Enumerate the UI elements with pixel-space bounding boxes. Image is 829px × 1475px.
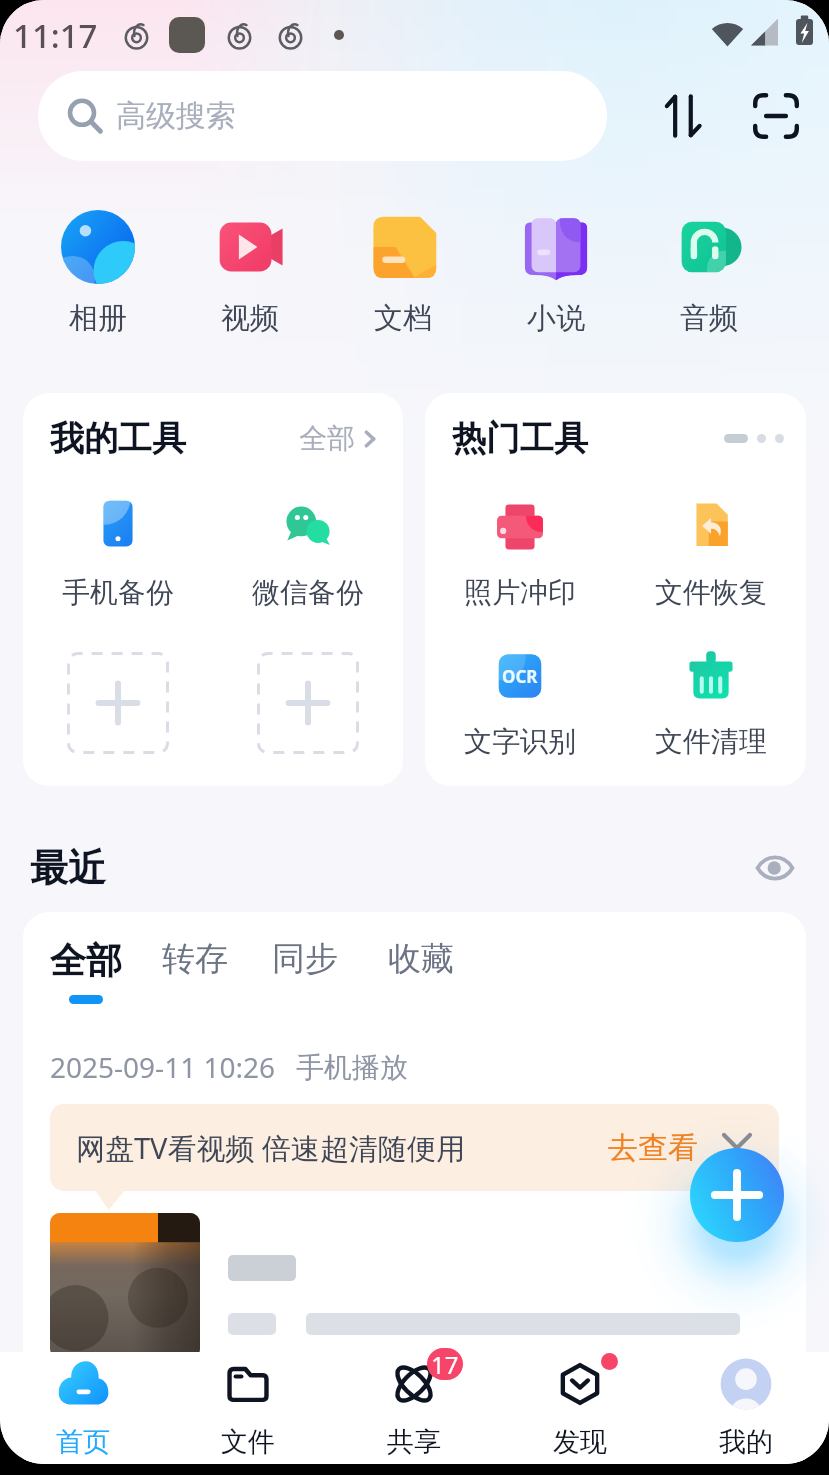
staticText: 2025-09-11 10:26 — [50, 1048, 276, 1086]
staticText: 17 — [431, 1348, 459, 1380]
button[interactable]: 网盘TV看视频 倍速超清随便用 — [50, 1104, 779, 1191]
staticText: 照片冲印 — [464, 575, 576, 610]
staticText: 全部 — [50, 938, 122, 983]
staticText: 最近 — [30, 844, 106, 892]
button[interactable]: OCR — [425, 648, 615, 759]
staticText: 文件清理 — [655, 724, 767, 759]
button[interactable]: Scan — [741, 81, 811, 151]
staticText: 同步 — [272, 938, 338, 980]
button[interactable]: 文档 — [326, 210, 479, 337]
button[interactable]: 小说 — [479, 210, 632, 337]
staticText: 相册 — [69, 300, 127, 337]
button[interactable]: 高级搜索 — [38, 71, 607, 161]
button[interactable]: 文件清理 — [615, 648, 806, 759]
staticText: 小说 — [527, 300, 585, 337]
staticText: 文字识别 — [464, 724, 576, 759]
button[interactable]: 照片冲印 — [425, 499, 615, 610]
button[interactable]: 相册 — [22, 210, 174, 337]
button[interactable]: 转存 — [162, 938, 228, 992]
button[interactable]: Close — [724, 1135, 750, 1161]
staticText: 手机播放 — [296, 1050, 408, 1085]
staticText: OCR — [502, 665, 538, 688]
staticText: 我的 — [719, 1425, 773, 1459]
button[interactable]: 微信备份 — [213, 499, 403, 610]
button[interactable]: 发现 — [497, 1352, 663, 1464]
staticText: 收藏 — [388, 938, 454, 980]
button[interactable]: 视频 — [174, 210, 326, 337]
staticText: 转存 — [162, 938, 228, 980]
staticText: 高级搜索 — [116, 97, 236, 135]
button[interactable]: 收藏 — [388, 938, 454, 992]
staticText: 文件恢复 — [655, 575, 767, 610]
button[interactable]: 文件 — [165, 1352, 331, 1464]
staticText: 全部 — [299, 421, 355, 456]
staticText: 首页 — [56, 1425, 110, 1459]
button[interactable]: 全部 — [50, 938, 122, 1004]
staticText: 音频 — [680, 300, 738, 337]
staticText: 11:17 — [13, 13, 98, 58]
button[interactable]: 同步 — [272, 938, 338, 992]
staticText: 我的工具 — [50, 417, 186, 460]
staticText: 热门工具 — [452, 417, 588, 460]
button[interactable]: 手机备份 — [23, 499, 213, 610]
staticText: 共享 — [387, 1425, 441, 1459]
staticText: 视频 — [221, 300, 279, 337]
button[interactable]: 17 — [331, 1352, 497, 1464]
staticText: 网盘TV看视频 倍速超清随便用 — [76, 1128, 466, 1168]
button[interactable]: Sort — [649, 81, 719, 151]
button[interactable]: Add tool — [67, 652, 169, 754]
button[interactable]: 我的 — [663, 1352, 829, 1464]
button[interactable]: 全部 — [299, 421, 383, 456]
button[interactable]: 文件恢复 — [615, 499, 806, 610]
staticText: 发现 — [553, 1425, 607, 1459]
button[interactable]: Add tool — [257, 652, 359, 754]
button[interactable]: Add — [690, 1148, 784, 1242]
staticText: 文档 — [374, 300, 432, 337]
staticText: 文件 — [221, 1425, 275, 1459]
button[interactable]: Toggle preview — [749, 842, 801, 894]
button[interactable]: 首页 — [0, 1352, 165, 1464]
button[interactable]: 音频 — [632, 210, 785, 337]
button[interactable] — [50, 1213, 786, 1359]
staticText: 去查看 — [608, 1129, 698, 1167]
staticText: 手机备份 — [62, 575, 174, 610]
staticText: 微信备份 — [252, 575, 364, 610]
